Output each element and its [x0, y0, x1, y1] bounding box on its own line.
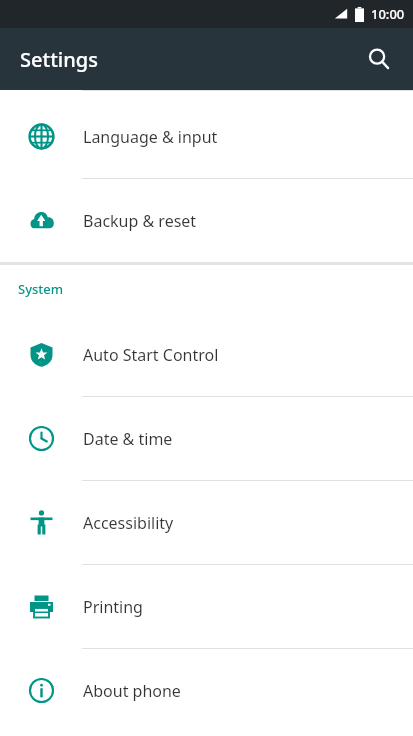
- button[interactable]: Printing: [0, 565, 413, 648]
- staticText: Language & input: [83, 126, 218, 148]
- button[interactable]: Date & time: [0, 397, 413, 480]
- button[interactable]: Accessibility: [0, 481, 413, 564]
- staticText: 10:00: [371, 5, 405, 23]
- button[interactable]: Language & input: [0, 95, 413, 178]
- staticText: Backup & reset: [83, 210, 197, 232]
- staticText: Accessibility: [83, 512, 174, 534]
- button[interactable]: Auto Start Control: [0, 313, 413, 396]
- staticText: Settings: [20, 46, 98, 73]
- staticText: About phone: [83, 680, 181, 702]
- button[interactable]: Search: [357, 37, 401, 81]
- button[interactable]: Backup & reset: [0, 179, 413, 262]
- staticText: Printing: [83, 596, 143, 618]
- staticText: System: [18, 280, 64, 298]
- staticText: Auto Start Control: [83, 344, 219, 366]
- button[interactable]: About phone: [0, 649, 413, 732]
- staticText: Date & time: [83, 428, 173, 450]
